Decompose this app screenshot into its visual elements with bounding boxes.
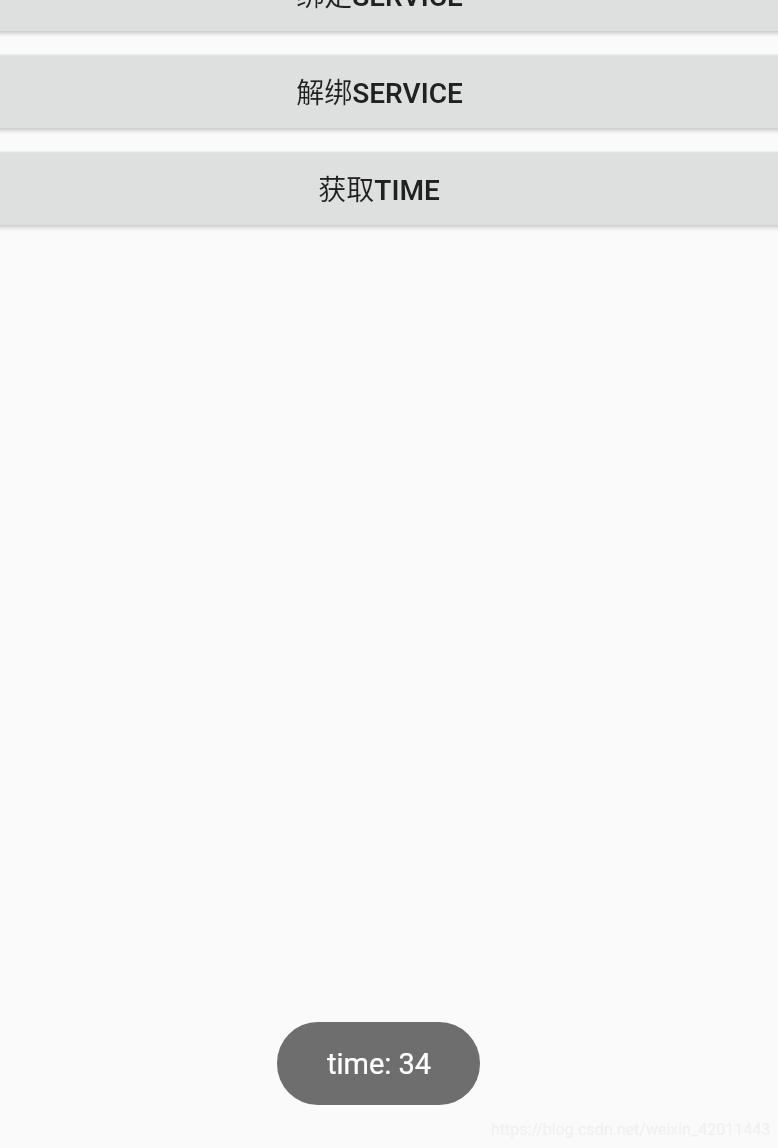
- button[interactable]: Toast time: 34: [277, 1022, 480, 1105]
- staticText: 解绑SERVICE: [296, 71, 463, 112]
- staticText: 获取TIME: [318, 168, 440, 209]
- button[interactable]: 解绑SERVICE: [0, 54, 778, 128]
- staticText: 绑定SERVICE: [296, 0, 463, 15]
- staticText: https://blog.csdn.net/weixin_42011443: [491, 1120, 771, 1139]
- button[interactable]: 获取TIME: [0, 151, 778, 225]
- staticText: time: 34: [327, 1047, 432, 1081]
- button[interactable]: 绑定SERVICE: [0, 0, 778, 31]
